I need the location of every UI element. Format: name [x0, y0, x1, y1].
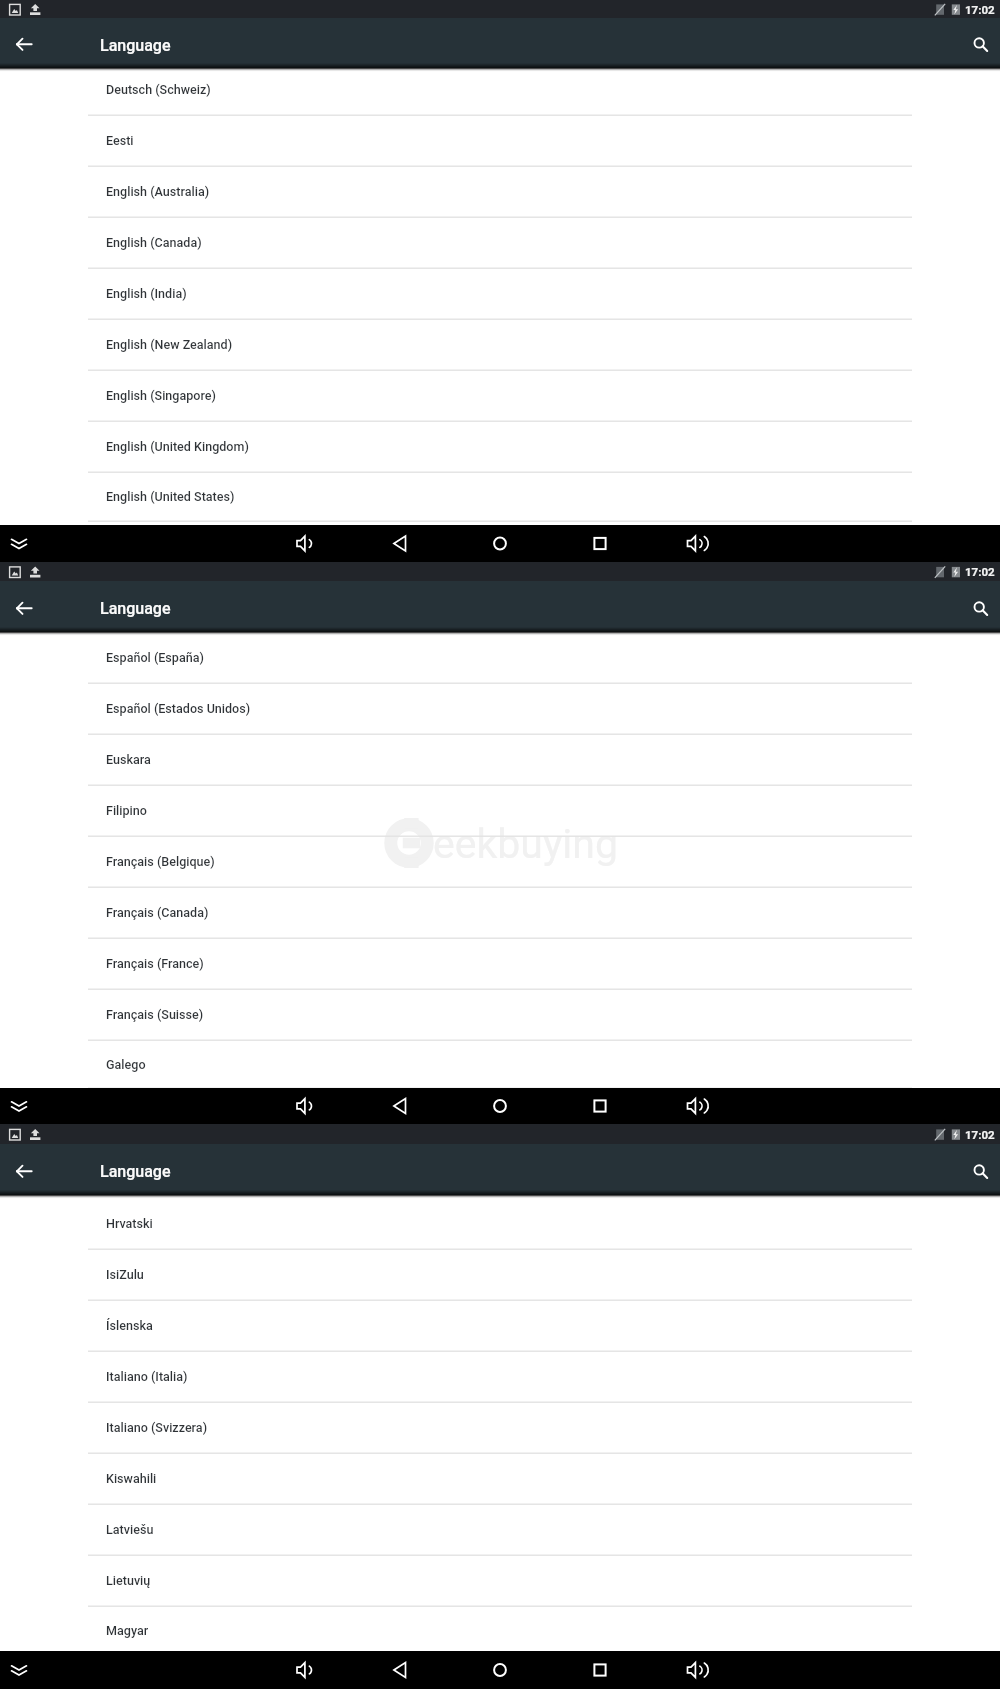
button[interactable]: Volume down: [283, 1651, 323, 1689]
staticText: IsiZulu: [106, 1267, 144, 1282]
button[interactable]: Euskara: [0, 734, 1000, 785]
staticText: Deutsch (Schweiz): [106, 82, 211, 97]
staticText: English (Canada): [106, 235, 202, 250]
button[interactable]: Volume up: [674, 1651, 714, 1689]
button[interactable]: Recent apps: [580, 525, 620, 562]
button[interactable]: Hide navigation bar: [0, 1088, 40, 1124]
button[interactable]: English (Australia): [0, 166, 1000, 217]
staticText: English (New Zealand): [106, 337, 233, 352]
staticText: English (United Kingdom): [106, 439, 249, 454]
button[interactable]: Back: [380, 1088, 420, 1124]
button[interactable]: Recent apps: [580, 1088, 620, 1124]
staticText: Italiano (Italia): [106, 1369, 188, 1384]
button[interactable]: Back: [380, 525, 420, 562]
button[interactable]: Français (Suisse): [0, 989, 1000, 1040]
button[interactable]: English (United Kingdom): [0, 421, 1000, 472]
button[interactable]: English (United States): [0, 472, 1000, 521]
staticText: Magyar: [106, 1623, 149, 1638]
staticText: Français (Suisse): [106, 1007, 204, 1022]
staticText: Hrvatski: [106, 1216, 153, 1231]
button[interactable]: Hrvatski: [0, 1198, 1000, 1249]
button[interactable]: Italiano (Svizzera): [0, 1402, 1000, 1453]
button[interactable]: Home: [480, 1088, 520, 1124]
staticText: Français (France): [106, 956, 204, 971]
staticText: eekbuying: [433, 820, 618, 868]
staticText: English (Singapore): [106, 388, 216, 403]
button[interactable]: Back: [0, 18, 48, 68]
button[interactable]: English (New Zealand): [0, 319, 1000, 370]
button[interactable]: Kiswahili: [0, 1453, 1000, 1504]
button[interactable]: Hide navigation bar: [0, 1651, 40, 1689]
button[interactable]: Volume up: [674, 525, 714, 562]
button[interactable]: Volume down: [283, 525, 323, 562]
staticText: Filipino: [106, 803, 147, 818]
staticText: Kiswahili: [106, 1471, 157, 1486]
staticText: Italiano (Svizzera): [106, 1420, 208, 1435]
staticText: 17:02: [965, 565, 995, 578]
button[interactable]: Lietuvių: [0, 1555, 1000, 1606]
staticText: 17:02: [965, 3, 995, 16]
button[interactable]: Français (France): [0, 938, 1000, 989]
button[interactable]: Latviešu: [0, 1504, 1000, 1555]
button[interactable]: Magyar: [0, 1606, 1000, 1651]
button[interactable]: English (Singapore): [0, 370, 1000, 421]
staticText: Español (Estados Unidos): [106, 701, 251, 716]
staticText: Language: [100, 599, 171, 618]
button[interactable]: Hide navigation bar: [0, 525, 40, 562]
staticText: Íslenska: [106, 1318, 153, 1333]
button[interactable]: Español (Estados Unidos): [0, 683, 1000, 734]
button[interactable]: Recent apps: [580, 1651, 620, 1689]
button[interactable]: Français (Canada): [0, 887, 1000, 938]
button[interactable]: English (Canada): [0, 217, 1000, 268]
button[interactable]: Français (Belgique): [0, 836, 1000, 887]
staticText: English (United States): [106, 489, 235, 504]
button[interactable]: Español (España): [0, 632, 1000, 683]
button[interactable]: Search: [956, 1144, 1000, 1195]
button[interactable]: Home: [480, 1651, 520, 1689]
button[interactable]: Back: [0, 1144, 48, 1195]
staticText: Français (Canada): [106, 905, 209, 920]
button[interactable]: Back: [380, 1651, 420, 1689]
button[interactable]: Search: [956, 581, 1000, 632]
button[interactable]: Deutsch (Schweiz): [0, 68, 1000, 115]
button[interactable]: Home: [480, 525, 520, 562]
button[interactable]: Volume down: [283, 1088, 323, 1124]
button[interactable]: Italiano (Italia): [0, 1351, 1000, 1402]
staticText: Galego: [106, 1057, 146, 1072]
button[interactable]: English (India): [0, 268, 1000, 319]
staticText: Language: [100, 1162, 171, 1181]
staticText: Language: [100, 36, 171, 55]
staticText: Latviešu: [106, 1522, 154, 1537]
button[interactable]: Back: [0, 581, 48, 632]
button[interactable]: Volume up: [674, 1088, 714, 1124]
button[interactable]: Search: [956, 18, 1000, 68]
staticText: Español (España): [106, 650, 204, 665]
staticText: Français (Belgique): [106, 854, 215, 869]
staticText: English (India): [106, 286, 187, 301]
staticText: Euskara: [106, 752, 151, 767]
button[interactable]: IsiZulu: [0, 1249, 1000, 1300]
staticText: English (Australia): [106, 184, 210, 199]
button[interactable]: Filipino: [0, 785, 1000, 836]
staticText: Lietuvių: [106, 1573, 151, 1588]
staticText: Eesti: [106, 133, 134, 148]
button[interactable]: Íslenska: [0, 1300, 1000, 1351]
button[interactable]: Eesti: [0, 115, 1000, 166]
button[interactable]: Galego: [0, 1040, 1000, 1088]
staticText: 17:02: [965, 1128, 995, 1141]
